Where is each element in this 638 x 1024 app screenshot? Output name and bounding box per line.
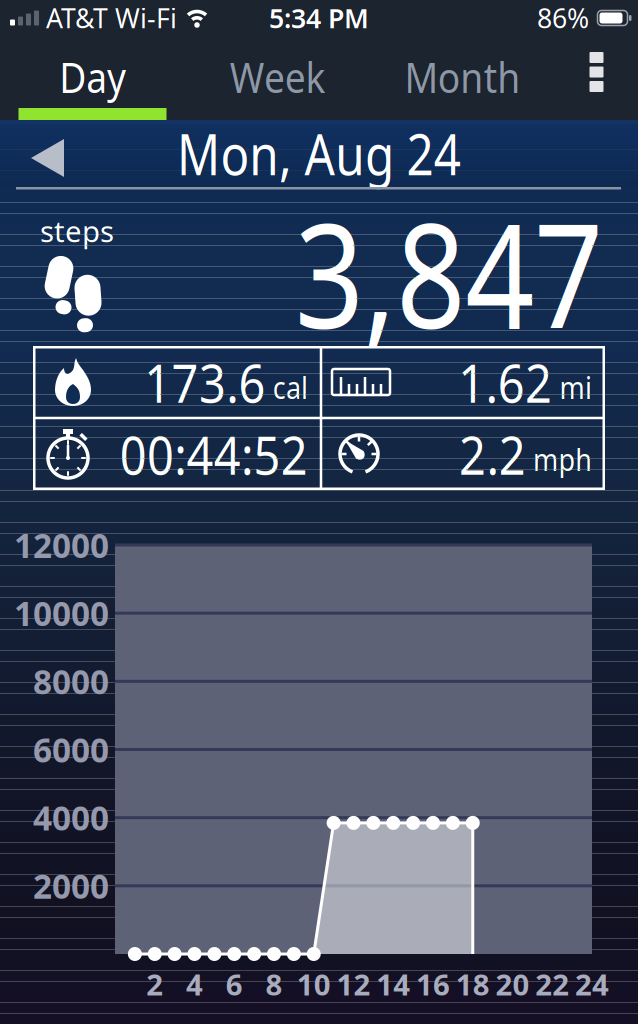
staticText: 10000 — [14, 591, 109, 635]
staticText: 18 — [456, 964, 490, 1003]
staticText: 6000 — [33, 727, 109, 772]
staticText: 4000 — [33, 795, 109, 840]
staticText: Week — [224, 50, 330, 104]
staticText: 6 — [226, 964, 243, 1003]
staticText: 2000 — [33, 864, 109, 908]
staticText: steps — [40, 211, 114, 250]
staticText: 10 — [297, 964, 331, 1003]
staticText: 5:34 PM — [269, 0, 369, 36]
staticText: 2.2 — [441, 419, 517, 489]
staticText: 1.62 — [440, 347, 547, 417]
staticText: 3,847 — [236, 177, 603, 368]
staticText: Day — [55, 50, 129, 104]
staticText: AT&T Wi-Fi — [46, 0, 177, 36]
staticText: cal — [260, 367, 308, 407]
staticText: mi — [547, 367, 592, 407]
staticText: 173.6 — [122, 347, 260, 417]
staticText: 2 — [146, 964, 163, 1003]
staticText: 4 — [186, 964, 203, 1003]
staticText: Mon, Aug 24 — [152, 116, 486, 191]
staticText: Month — [398, 50, 527, 104]
staticText: 86% — [537, 0, 589, 36]
staticText: 14 — [376, 964, 410, 1003]
staticText: 24 — [575, 964, 609, 1003]
staticText: 20 — [495, 964, 529, 1003]
button[interactable]: More options — [555, 36, 638, 120]
staticText: 12000 — [14, 523, 109, 567]
button[interactable]: Previous day — [0, 120, 79, 187]
button[interactable]: Month — [370, 36, 555, 120]
staticText: 22 — [535, 964, 569, 1003]
button[interactable]: Week — [185, 36, 370, 120]
button[interactable]: Day — [0, 36, 185, 120]
staticText: 12 — [336, 964, 370, 1003]
staticText: mph — [517, 439, 592, 479]
staticText: 8000 — [33, 659, 109, 703]
staticText: 00:44:52 — [94, 419, 308, 489]
staticText: 16 — [416, 964, 450, 1003]
staticText: 8 — [265, 964, 282, 1003]
